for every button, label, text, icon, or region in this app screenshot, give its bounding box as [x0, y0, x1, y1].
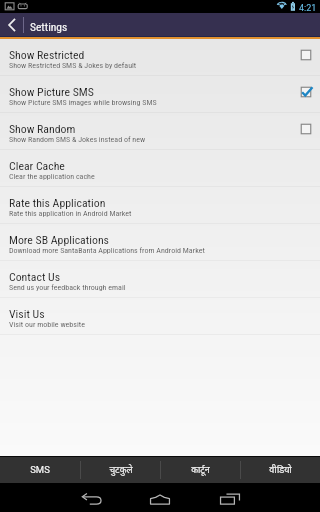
button[interactable]: Home	[140, 483, 180, 512]
button[interactable]: Rate this Application	[0, 187, 320, 224]
staticText: Rate this application in Android Market	[9, 209, 132, 218]
staticText: Visit Us	[9, 307, 45, 321]
staticText: Rate this Application	[9, 196, 106, 210]
button[interactable]: Back	[0, 13, 23, 36]
staticText: Visit our mobile website	[9, 320, 85, 329]
staticText: Clear Cache	[9, 159, 65, 173]
button[interactable]: Show Random	[0, 113, 320, 150]
staticText: SMS	[30, 464, 50, 475]
staticText: Show Restricted	[9, 48, 85, 62]
button[interactable]: चुटकुले	[81, 457, 160, 483]
button[interactable]: Contact Us	[0, 261, 320, 298]
staticText: 4:21	[299, 3, 317, 14]
staticText: Contact Us	[9, 270, 61, 284]
staticText: Clear the application cache	[9, 172, 95, 181]
button[interactable]: Show Picture SMS	[0, 76, 320, 113]
staticText: Settings	[30, 20, 68, 33]
staticText: वीडियो	[269, 463, 292, 475]
staticText: Show Picture SMS	[9, 85, 94, 99]
button[interactable]: Recent apps	[210, 483, 250, 512]
button[interactable]: Show Restricted	[0, 39, 320, 76]
staticText: More SB Applications	[9, 233, 109, 247]
button[interactable]: Back	[72, 483, 112, 512]
button[interactable]: वीडियो	[241, 457, 320, 483]
button[interactable]: Clear Cache	[0, 150, 320, 187]
staticText: Show Random SMS & Jokes instead of new	[9, 135, 146, 144]
staticText: Download more SantaBanta Applications fr…	[9, 246, 205, 255]
staticText: चुटकुले	[109, 463, 133, 475]
staticText: कार्टून	[191, 463, 210, 475]
button[interactable]: SMS	[0, 457, 80, 483]
button[interactable]: More SB Applications	[0, 224, 320, 261]
staticText: Show Random	[9, 122, 76, 136]
staticText: Send us your feedback through email	[9, 283, 126, 292]
button[interactable]: कार्टून	[161, 457, 240, 483]
staticText: Show Picture SMS images while browsing S…	[9, 98, 157, 107]
button[interactable]: Visit Us	[0, 298, 320, 335]
staticText: Show Restricted SMS & Jokes by default	[9, 61, 137, 70]
